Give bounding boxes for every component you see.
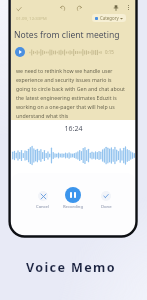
button[interactable]: Done (92, 191, 120, 208)
staticText: Done (101, 204, 112, 210)
staticText: 16:24 (11, 124, 136, 134)
button[interactable]: Redo (74, 3, 83, 12)
button[interactable]: More options (124, 3, 133, 12)
button[interactable]: Undo (58, 3, 67, 12)
button[interactable]: 0:15 (15, 46, 123, 58)
staticText: 0:15 (105, 49, 114, 55)
button[interactable]: Cancel (29, 191, 57, 208)
staticText: Recording (63, 204, 83, 210)
staticText: 01.09, 12:33PM (16, 15, 47, 21)
staticText: Cancel (36, 204, 50, 210)
button[interactable]: Category (92, 14, 126, 22)
button[interactable]: Save (14, 4, 23, 13)
staticText: Notes from client meeting (14, 29, 120, 41)
staticText: we need to rethink how we handle user ex… (16, 67, 126, 120)
button[interactable]: Recording (59, 187, 87, 204)
button[interactable]: Pin (111, 3, 120, 12)
staticText: Category (100, 15, 119, 21)
staticText: Voice Memo (26, 259, 116, 276)
